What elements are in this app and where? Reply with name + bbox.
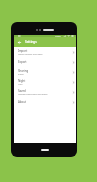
staticText: Export — [18, 60, 27, 64]
staticText: About — [18, 100, 26, 104]
button[interactable]: Import — [14, 47, 76, 57]
button[interactable]: Saved — [14, 87, 76, 97]
button[interactable]: Back — [17, 37, 22, 47]
staticText: 12:30 — [55, 35, 61, 37]
staticText: Manage saved items and drafts — [18, 93, 48, 96]
button[interactable]: Sharing — [14, 67, 76, 77]
staticText: Auto — [18, 83, 23, 86]
button[interactable]: Export — [14, 57, 76, 67]
staticText: Sharing — [18, 69, 29, 73]
staticText: Public — [18, 73, 24, 76]
button[interactable]: Night — [14, 77, 76, 87]
staticText: Import content from apps — [18, 53, 43, 56]
staticText: Night — [18, 79, 26, 83]
staticText: Import — [18, 49, 28, 53]
staticText: Saved — [18, 89, 26, 93]
staticText: Settings — [25, 40, 37, 44]
button[interactable]: About — [14, 97, 76, 107]
